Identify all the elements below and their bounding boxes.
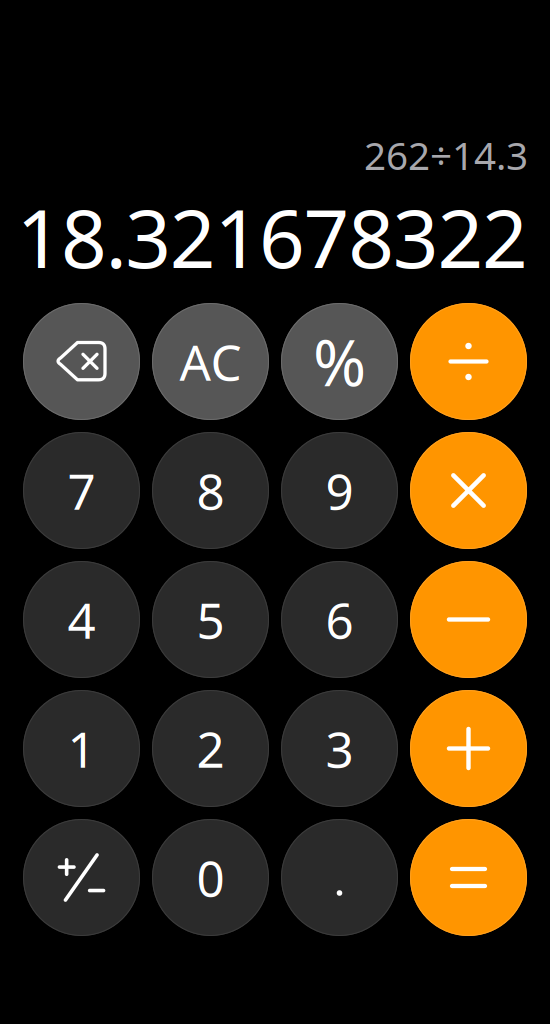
button[interactable]: 3 [281,690,398,807]
button[interactable]: 5 [152,561,269,678]
button[interactable]: Delete [23,303,140,420]
button[interactable]: Subtract [410,561,527,678]
staticText: 5 [196,587,224,652]
staticText: 6 [325,587,353,652]
staticText: 2 [196,716,224,781]
staticText: 7 [67,458,95,523]
staticText: 9 [325,458,353,523]
staticText: AC [179,329,241,394]
button[interactable]: 1 [23,690,140,807]
staticText: 3 [325,716,353,781]
button[interactable]: % [281,303,398,420]
button[interactable]: Decimal point [281,819,398,936]
button[interactable]: 2 [152,690,269,807]
button[interactable]: 9 [281,432,398,549]
staticText: 1 [67,716,95,781]
button[interactable]: AC [152,303,269,420]
staticText: 0 [196,845,224,910]
staticText: 4 [67,587,95,652]
staticText: % [313,319,366,404]
button[interactable]: 6 [281,561,398,678]
button[interactable]: Plus minus [23,819,140,936]
staticText: 18.321678322 [16,184,528,290]
button[interactable]: Divide [410,303,527,420]
button[interactable]: 0 [152,819,269,936]
button[interactable]: 8 [152,432,269,549]
staticText: 262÷14.3 [364,129,528,181]
button[interactable]: 4 [23,561,140,678]
staticText: 8 [196,458,224,523]
button[interactable]: 7 [23,432,140,549]
button[interactable]: Add [410,690,527,807]
button[interactable]: Equals [410,819,527,936]
button[interactable]: Multiply [410,432,527,549]
